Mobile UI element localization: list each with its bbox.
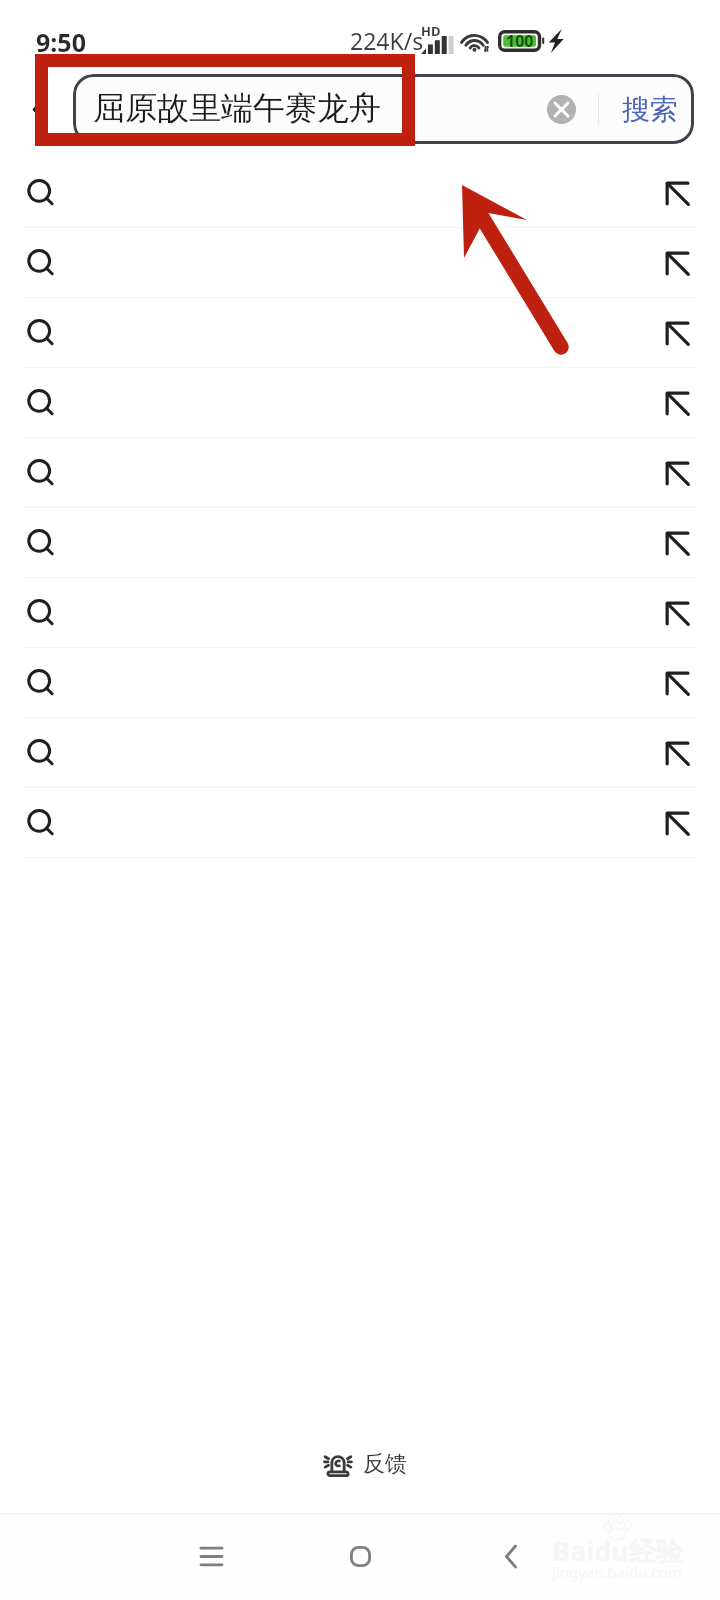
staticText: 224K/s <box>350 25 424 56</box>
button[interactable]: Use suggestion <box>0 788 720 858</box>
button[interactable]: Back <box>16 74 62 144</box>
button[interactable]: Use suggestion <box>0 648 720 718</box>
button[interactable]: Use suggestion <box>0 158 720 228</box>
button[interactable]: Home <box>340 1536 380 1576</box>
button[interactable]: Use suggestion <box>661 737 694 770</box>
button[interactable]: Use suggestion <box>0 228 720 298</box>
staticText: Baidu经验 <box>552 1532 683 1569</box>
button[interactable]: Back <box>491 1536 531 1576</box>
staticText: HD <box>421 22 441 40</box>
button[interactable]: Use suggestion <box>0 718 720 788</box>
button[interactable]: Use suggestion <box>661 527 694 560</box>
button[interactable]: Use suggestion <box>0 298 720 368</box>
staticText: 100 <box>506 30 534 52</box>
button[interactable]: Clear <box>547 95 576 124</box>
button[interactable]: Use suggestion <box>661 317 694 350</box>
button[interactable]: Recents <box>191 1536 231 1576</box>
button[interactable]: Use suggestion <box>661 597 694 630</box>
button[interactable]: Use suggestion <box>661 667 694 700</box>
button[interactable]: Use suggestion <box>0 578 720 648</box>
staticText: 搜索 <box>622 92 678 127</box>
button[interactable]: Use suggestion <box>661 177 694 210</box>
button[interactable]: 搜索 <box>622 86 678 132</box>
button[interactable]: 反馈 <box>314 1444 417 1484</box>
button[interactable]: Use suggestion <box>0 508 720 578</box>
button[interactable]: 屈原故里端午赛龙舟 <box>73 74 694 144</box>
staticText: 屈原故里端午赛龙舟 <box>93 88 381 128</box>
button[interactable]: Use suggestion <box>661 387 694 420</box>
staticText: 9:50 <box>36 25 86 59</box>
button[interactable]: Use suggestion <box>661 807 694 840</box>
button[interactable]: Use suggestion <box>661 247 694 280</box>
button[interactable]: Use suggestion <box>0 438 720 508</box>
button[interactable]: Use suggestion <box>0 368 720 438</box>
staticText: 反馈 <box>363 1450 407 1478</box>
button[interactable]: Use suggestion <box>661 457 694 490</box>
